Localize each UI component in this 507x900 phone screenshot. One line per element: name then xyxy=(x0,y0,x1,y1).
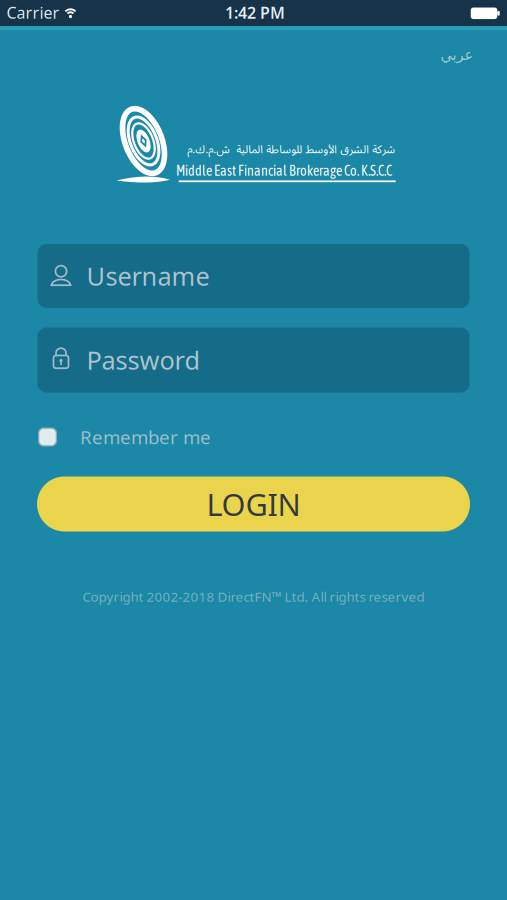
staticText: شركة الشرق الأوسط للوساطة المالية ش.م.ك.… xyxy=(187,138,395,162)
staticText: Carrier xyxy=(6,2,59,23)
staticText: عربي xyxy=(440,47,473,63)
button[interactable]: Remember me xyxy=(38,422,258,452)
staticText: 1:42 PM xyxy=(225,2,285,23)
button[interactable]: LOGIN xyxy=(37,476,470,531)
button[interactable]: Username xyxy=(37,244,469,308)
staticText: Copyright 2002-2018 DirectFN™ Ltd. All r… xyxy=(82,588,424,605)
staticText: Middle East Financial Brokerage Co. K.S.… xyxy=(176,163,392,179)
staticText: LOGIN xyxy=(206,484,300,524)
button[interactable]: Switch language to Arabic xyxy=(440,47,473,63)
staticText: Password xyxy=(86,343,200,377)
staticText: Remember me xyxy=(80,425,211,449)
staticText: Username xyxy=(86,259,209,293)
button[interactable]: Password xyxy=(37,327,469,392)
